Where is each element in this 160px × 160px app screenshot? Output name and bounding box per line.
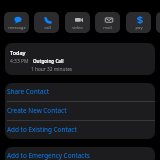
staticText: message — [8, 25, 26, 31]
staticText: call — [44, 25, 51, 31]
staticText: Outgoing Call — [33, 58, 64, 64]
button[interactable]: Add to Existing Contact — [5, 121, 155, 139]
staticText: 4:33 PM — [10, 58, 29, 65]
button[interactable]: Send mail — [95, 12, 120, 33]
staticText: video — [72, 25, 83, 31]
button[interactable]: Pay — [126, 12, 151, 33]
staticText: Add to Existing Contact — [7, 125, 77, 134]
button[interactable]: Info — [156, 12, 160, 33]
staticText: mail — [103, 25, 112, 31]
button[interactable]: Send message — [4, 12, 29, 33]
staticText: Today — [10, 49, 26, 56]
staticText: Share Contact — [7, 87, 49, 96]
button[interactable]: Video call — [65, 12, 90, 33]
staticText: 1 hour 32 minutes — [31, 66, 73, 73]
button[interactable]: Create New Contact — [5, 102, 155, 120]
button[interactable]: Share Contact — [5, 83, 155, 101]
staticText: Create New Contact — [7, 106, 67, 115]
button[interactable]: Call — [34, 12, 59, 33]
staticText: pay — [135, 25, 143, 31]
staticText: Add to Emergency Contacts — [7, 151, 90, 160]
button[interactable]: Today — [5, 43, 155, 75]
button[interactable]: Add to Emergency Contacts — [5, 147, 155, 160]
